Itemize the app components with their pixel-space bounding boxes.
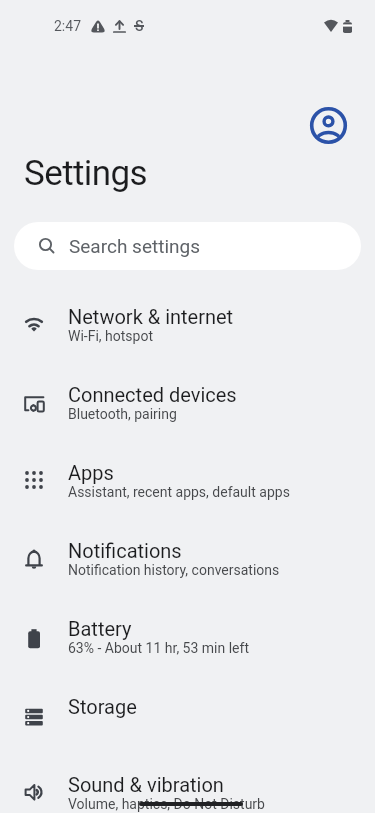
- button[interactable]: Connected devices: [0, 363, 375, 441]
- button[interactable]: Battery: [0, 597, 375, 675]
- staticText: Network & internet: [68, 305, 234, 328]
- staticText: Assistant, recent apps, default apps: [68, 484, 290, 500]
- button[interactable]: Notifications: [0, 519, 375, 597]
- staticText: Volume, haptics, Do Not Disturb: [68, 796, 265, 812]
- staticText: Bluetooth, pairing: [68, 406, 177, 422]
- staticText: Wi-Fi, hotspot: [68, 328, 153, 344]
- button[interactable]: Network & internet: [0, 285, 375, 363]
- staticText: Storage: [68, 695, 137, 718]
- staticText: Connected devices: [68, 383, 237, 406]
- staticText: 2:47: [54, 18, 81, 34]
- button[interactable]: Apps: [0, 441, 375, 519]
- button[interactable]: [309, 106, 348, 145]
- staticText: Apps: [68, 461, 114, 484]
- button[interactable]: Storage: [0, 675, 375, 753]
- staticText: Notification history, conversations: [68, 562, 280, 578]
- staticText: Notifications: [68, 539, 182, 562]
- button[interactable]: Search settings: [14, 222, 361, 270]
- staticText: Search settings: [69, 235, 200, 257]
- staticText: 63% - About 11 hr, 53 min left: [68, 640, 249, 656]
- staticText: Settings: [24, 153, 147, 194]
- staticText: S: [135, 18, 144, 34]
- button[interactable]: Sound & vibration: [0, 753, 375, 813]
- staticText: Battery: [68, 617, 132, 640]
- staticText: Sound & vibration: [68, 773, 224, 796]
